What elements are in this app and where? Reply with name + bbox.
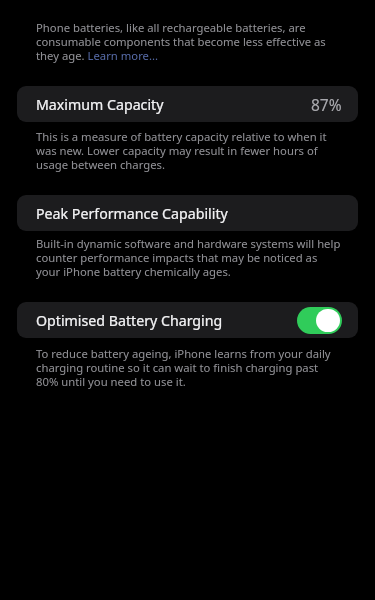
button[interactable]: Maximum Capacity [17,86,358,122]
staticText: Phone batteries, like all rechargeable b… [36,20,341,63]
staticText: To reduce battery ageing, iPhone learns … [36,346,341,389]
button[interactable]: Optimised Battery Charging, on [297,307,342,334]
staticText: This is a measure of battery capacity re… [36,129,341,172]
staticText: 87% [311,94,342,115]
staticText: Optimised Battery Charging [36,311,223,330]
button[interactable]: Peak Performance Capability [17,195,358,231]
staticText: Maximum Capacity [36,95,164,114]
staticText: Built-in dynamic software and hardware s… [36,236,341,279]
button[interactable]: Optimised Battery Charging [17,302,358,338]
staticText: Peak Performance Capability [36,204,228,223]
